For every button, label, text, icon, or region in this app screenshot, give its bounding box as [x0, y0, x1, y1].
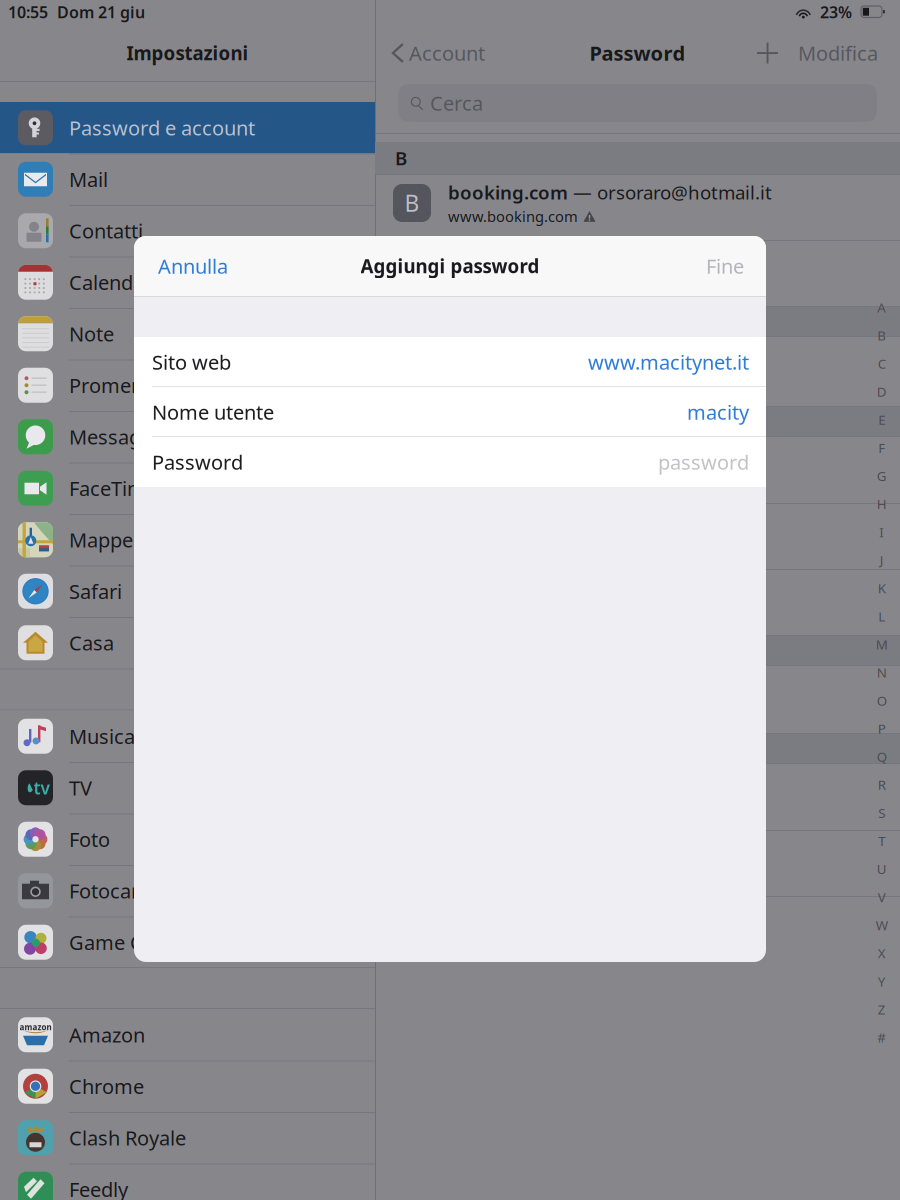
button[interactable]: Nome utente	[134, 387, 766, 437]
button[interactable]: Note	[0, 308, 375, 359]
staticText: Safari	[69, 578, 122, 605]
button[interactable]: Messaggi	[0, 411, 375, 462]
staticText: Password	[152, 449, 243, 475]
button[interactable]: Safari	[0, 565, 375, 617]
staticText: S	[878, 804, 885, 822]
staticText: Y	[878, 972, 886, 990]
staticText: X	[878, 944, 886, 962]
staticText: Z	[878, 1000, 886, 1018]
button[interactable]: Musica	[0, 710, 375, 762]
staticText: D	[877, 383, 887, 400]
button[interactable]: Mail	[0, 153, 375, 205]
staticText: A	[877, 298, 886, 316]
staticText: O	[877, 692, 887, 709]
button[interactable]: Chrome	[0, 1060, 375, 1112]
button[interactable]: B	[375, 175, 900, 231]
staticText: Password e account	[69, 114, 255, 141]
staticText: U	[877, 860, 887, 878]
staticText: F	[878, 439, 885, 457]
button[interactable]: Aggiungi password	[745, 33, 790, 73]
button[interactable]: Password	[134, 437, 766, 487]
staticText: TV	[69, 774, 92, 801]
staticText: N	[877, 663, 887, 681]
staticText: Fotocamera	[69, 877, 180, 904]
staticText: Cerca	[430, 90, 483, 116]
staticText: J	[880, 551, 884, 569]
staticText: G	[877, 467, 887, 485]
staticText: Foto	[69, 826, 110, 853]
staticText: Mappe	[69, 526, 133, 553]
staticText: macity	[687, 399, 749, 425]
staticText: E	[878, 411, 885, 428]
staticText: password	[658, 449, 749, 475]
button[interactable]: FaceTime	[0, 462, 375, 514]
staticText: W	[876, 916, 888, 934]
button[interactable]: Account	[375, 33, 495, 73]
button[interactable]: Annulla	[134, 236, 244, 296]
staticText: Impostazioni	[126, 41, 248, 65]
button[interactable]: Feedly	[0, 1163, 375, 1200]
staticText: Mail	[69, 166, 108, 193]
staticText: Account	[409, 40, 485, 66]
staticText: Amazon	[69, 1021, 145, 1048]
staticText: Casa	[69, 629, 114, 656]
staticText: B	[395, 146, 407, 170]
button[interactable]: Modifica	[790, 33, 900, 73]
button[interactable]: Password e account	[0, 102, 375, 153]
button[interactable]: Clash Royale	[0, 1112, 375, 1163]
button[interactable]: Contatti	[0, 205, 375, 256]
staticText: Musica	[69, 723, 135, 750]
staticText: 10:55	[8, 1, 48, 23]
staticText: Nome utente	[152, 399, 274, 425]
staticText: Aggiungi password	[360, 254, 539, 278]
button[interactable]: Promemoria	[0, 359, 375, 411]
staticText: V	[878, 888, 886, 906]
staticText: Annulla	[158, 253, 228, 279]
staticText: Modifica	[798, 40, 878, 66]
staticText: K	[878, 579, 886, 597]
staticText: Q	[877, 748, 887, 765]
staticText: Game Center	[69, 929, 192, 956]
button[interactable]: tv	[0, 762, 375, 813]
staticText: tv	[33, 776, 49, 799]
staticText: Promemoria	[69, 372, 186, 399]
staticText: Note	[69, 320, 114, 347]
staticText: L	[878, 607, 885, 625]
staticText: Fine	[706, 253, 744, 279]
staticText: Clash Royale	[69, 1124, 186, 1151]
staticText: Messaggi	[69, 423, 158, 450]
staticText: R	[878, 776, 886, 793]
button[interactable]: Fine	[690, 236, 766, 296]
button[interactable]: Mappe	[0, 514, 375, 565]
button[interactable]: Sito web	[134, 337, 766, 387]
staticText: www.booking.com	[448, 207, 578, 226]
staticText: Dom 21 giu	[57, 1, 145, 23]
staticText: Contatti	[69, 217, 143, 244]
button[interactable]: Foto	[0, 813, 375, 865]
button[interactable]: Calendario	[0, 256, 375, 308]
button[interactable]: Fotocamera	[0, 865, 375, 916]
staticText: H	[877, 495, 887, 513]
staticText: Sito web	[152, 349, 231, 375]
staticText: Feedly	[69, 1176, 128, 1200]
staticText: 23%	[820, 1, 852, 23]
button[interactable]: Game Center	[0, 916, 375, 968]
staticText: B	[877, 327, 886, 344]
staticText: www.macitynet.it	[588, 349, 749, 375]
button[interactable]: amazon	[0, 1009, 375, 1060]
staticText: I	[879, 523, 884, 541]
staticText: — orsoraro@hotmail.it	[568, 180, 772, 205]
staticText: amazon	[19, 1022, 51, 1032]
staticText: #	[877, 1029, 886, 1046]
staticText: Chrome	[69, 1073, 144, 1100]
staticText: FaceTime	[69, 475, 157, 502]
staticText: Password	[589, 40, 685, 66]
staticText: Calendario	[69, 269, 169, 296]
staticText: B	[404, 188, 419, 218]
button[interactable]: Casa	[0, 617, 375, 668]
staticText: T	[878, 832, 885, 850]
staticText: booking.com	[448, 180, 568, 205]
staticText: C	[878, 355, 886, 372]
staticText: P	[878, 720, 886, 737]
staticText: M	[876, 635, 888, 653]
